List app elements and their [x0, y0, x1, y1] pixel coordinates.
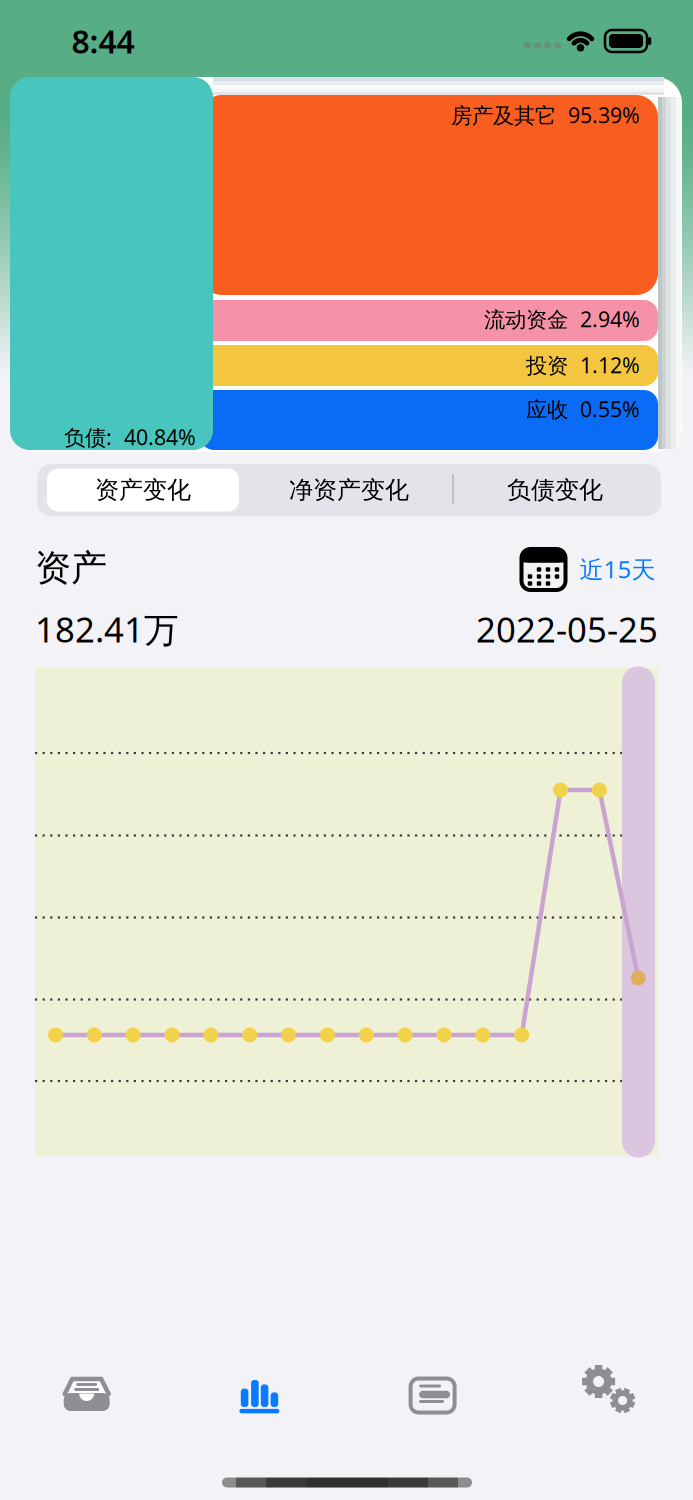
staticText: 2022-05-25: [476, 606, 658, 652]
button[interactable]: 资产变化: [39, 464, 246, 516]
button[interactable]: 负债变化: [451, 464, 658, 516]
button[interactable]: 净资产变化: [245, 464, 452, 516]
button[interactable]: 账户: [0, 1350, 173, 1444]
button[interactable]: 设置: [520, 1350, 693, 1444]
staticText: 8:44: [71, 20, 134, 62]
staticText: 负债: 40.84%: [64, 423, 196, 451]
staticText: 净资产变化: [289, 475, 409, 505]
staticText: 负债变化: [507, 475, 603, 505]
staticText: 流动资金 2.94%: [484, 305, 640, 333]
button[interactable]: 近15天: [520, 547, 655, 591]
staticText: 资产变化: [95, 475, 191, 505]
staticText: 182.41万: [35, 606, 179, 652]
button[interactable]: 账单: [347, 1350, 520, 1444]
staticText: 资产: [35, 546, 107, 590]
staticText: 房产及其它 95.39%: [451, 101, 640, 129]
staticText: 应收 0.55%: [526, 395, 640, 423]
staticText: 投资 1.12%: [526, 351, 640, 379]
button[interactable]: 图表: [173, 1350, 346, 1444]
staticText: 近15天: [579, 553, 655, 585]
